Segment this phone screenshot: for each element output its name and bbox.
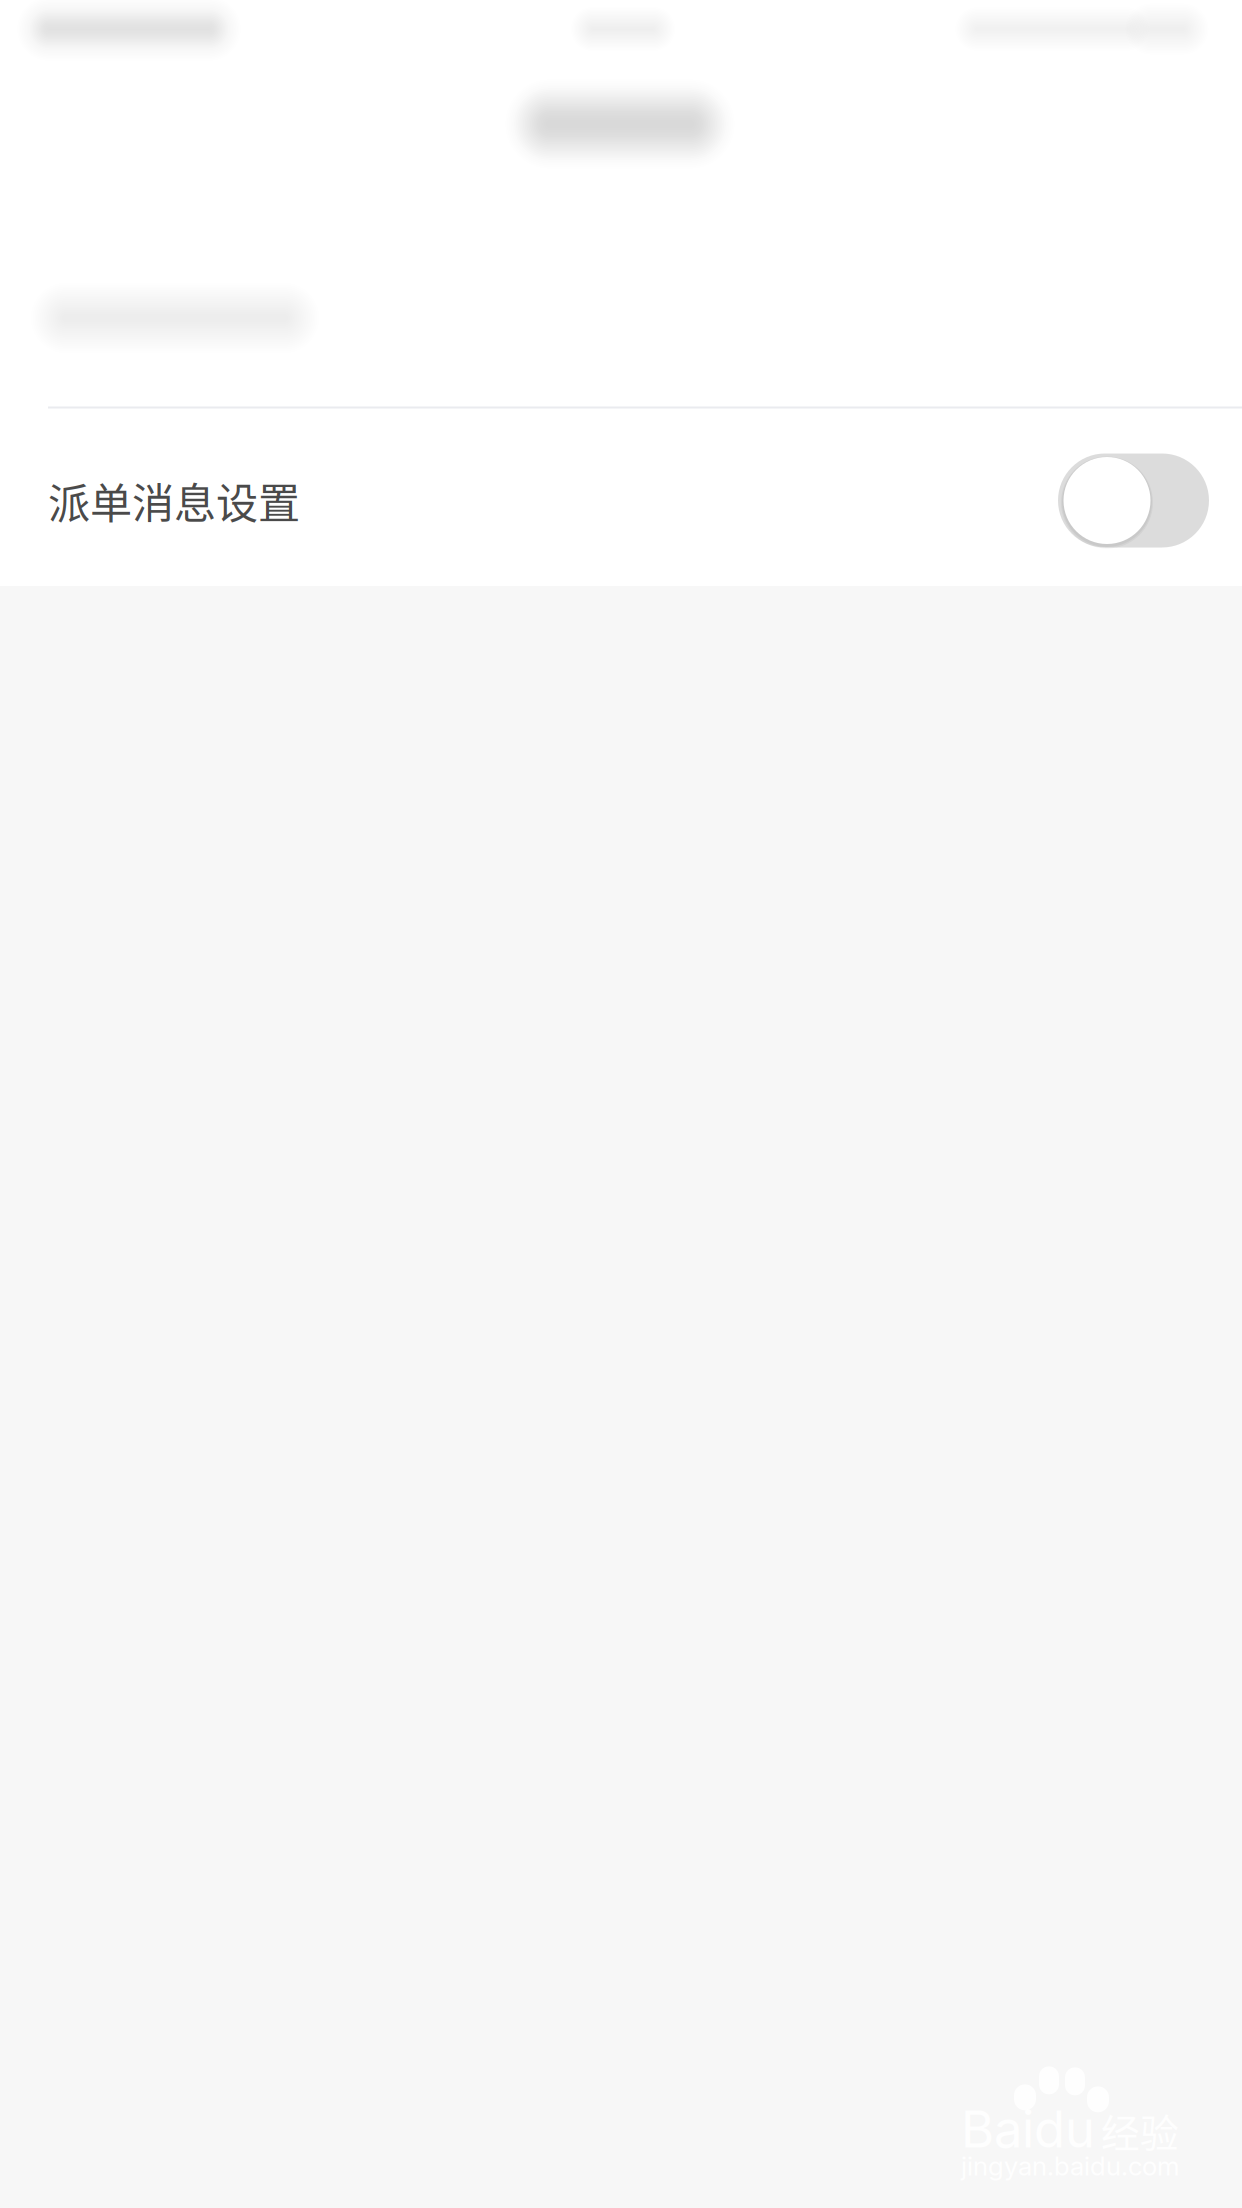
button[interactable]: 设置项 xyxy=(0,218,1242,406)
staticText: 派单消息设置 xyxy=(48,470,300,531)
button[interactable]: 派单消息设置 xyxy=(0,410,1242,590)
